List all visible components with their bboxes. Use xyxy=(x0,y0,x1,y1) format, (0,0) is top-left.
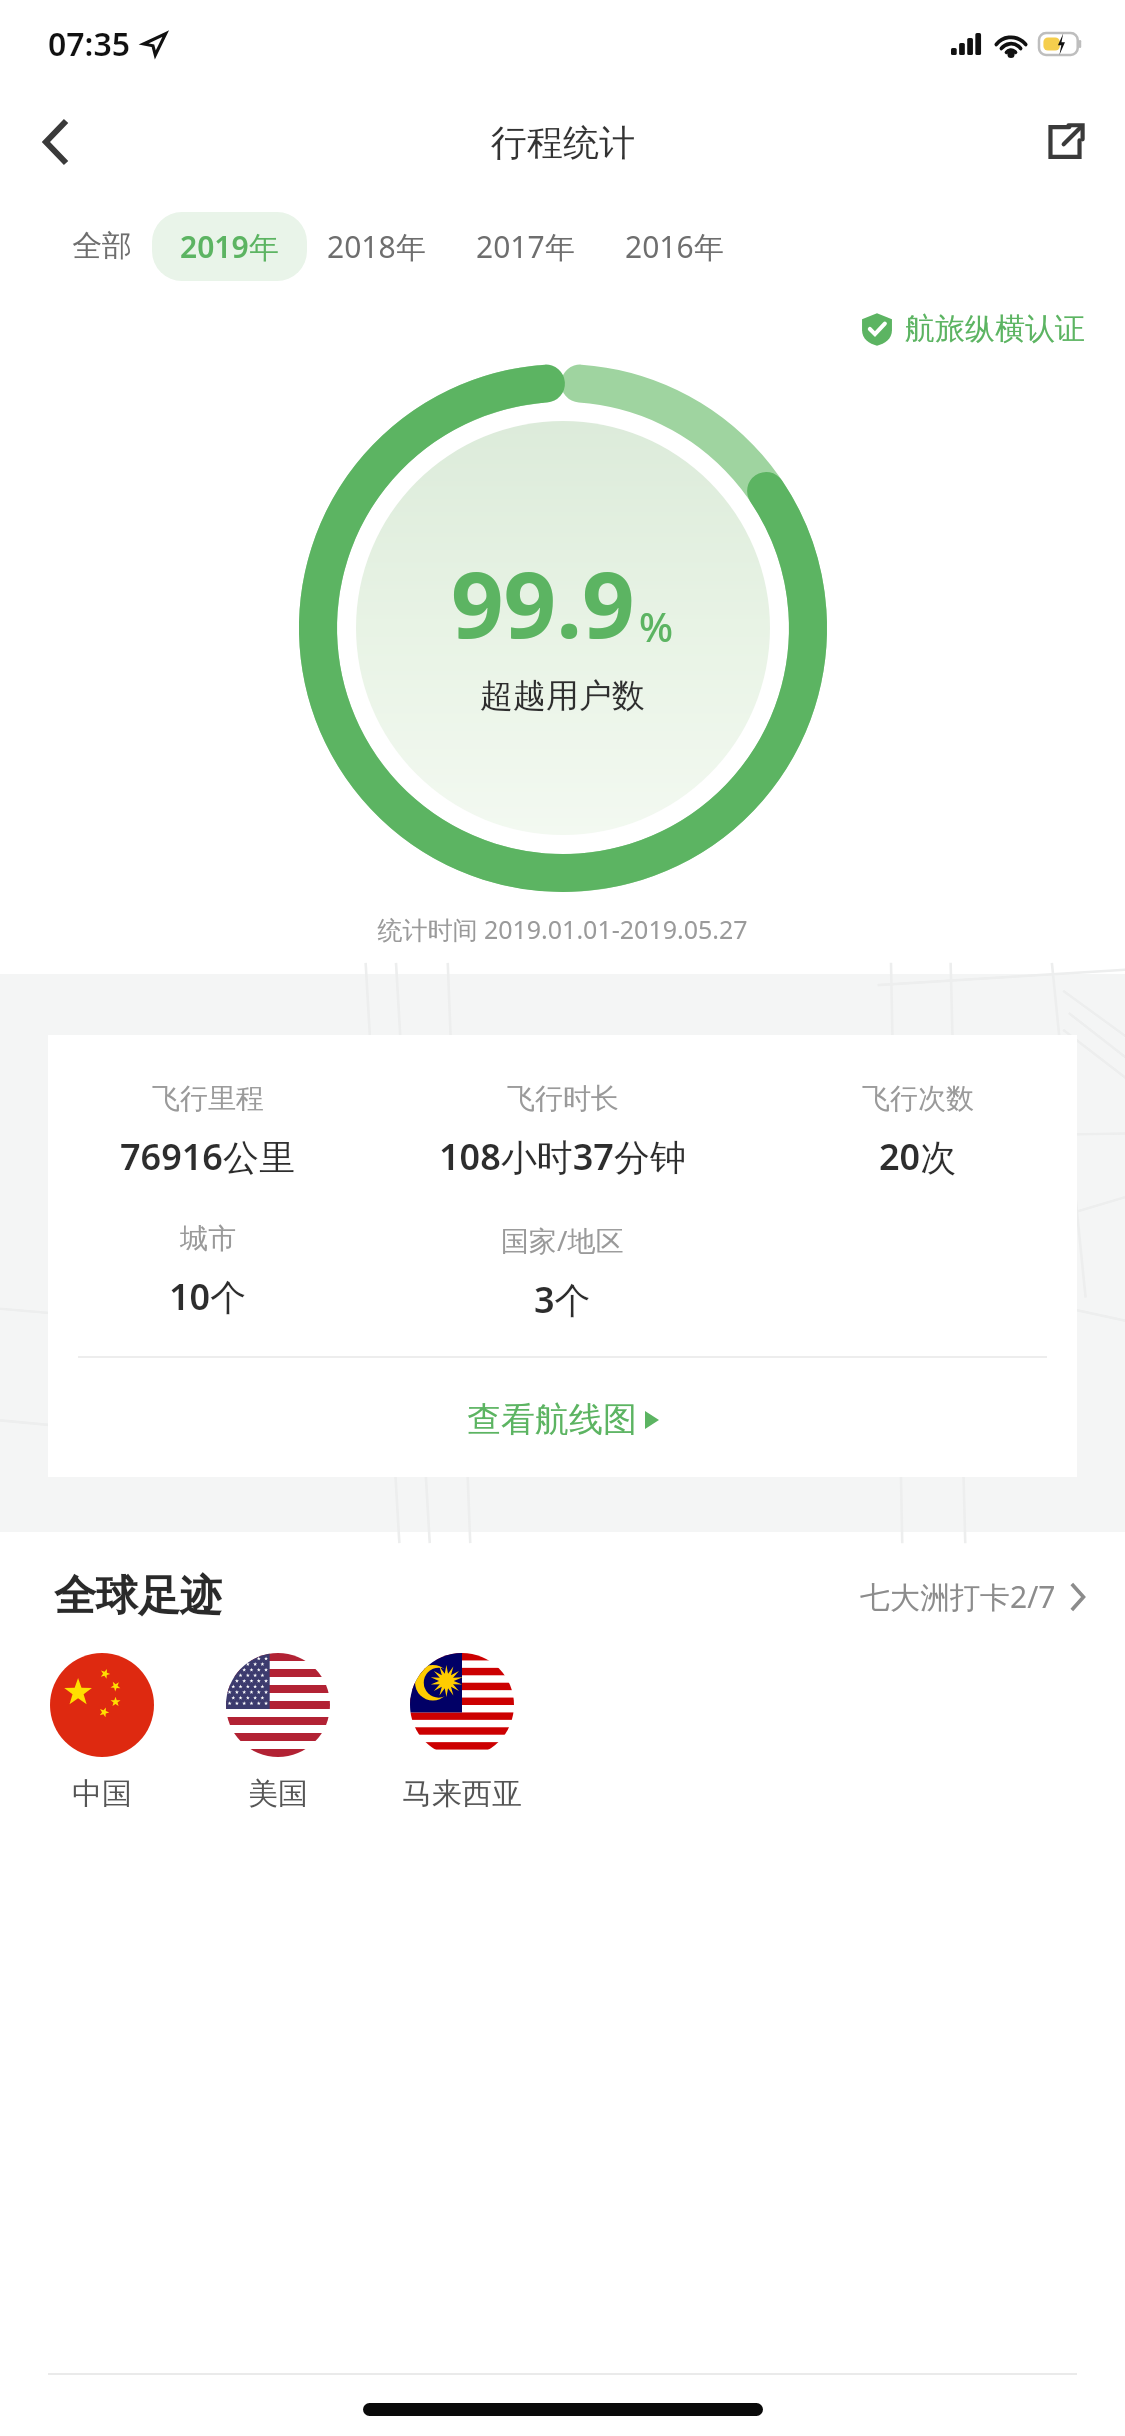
button[interactable]: 航旅纵横认证 xyxy=(860,310,1085,348)
staticText: % xyxy=(639,599,674,653)
button[interactable]: 中国 xyxy=(50,1653,154,1813)
button[interactable]: 2017年 xyxy=(460,212,591,281)
staticText: 飞行时长 xyxy=(507,1081,619,1116)
staticText: 七大洲打卡2/7 xyxy=(860,1576,1056,1617)
button[interactable]: Back xyxy=(16,102,96,182)
staticText: 全球足迹 xyxy=(54,1570,222,1623)
button[interactable]: 2019年 xyxy=(152,212,307,281)
staticText: 108小时37分钟 xyxy=(439,1132,686,1181)
button[interactable]: 马来西亚 xyxy=(402,1653,522,1813)
staticText: 飞行次数 xyxy=(862,1081,974,1116)
button[interactable]: 美国 xyxy=(226,1653,330,1813)
staticText: 99.9 xyxy=(451,540,635,665)
staticText: 07:35 xyxy=(48,22,131,66)
button[interactable]: 全部 xyxy=(56,213,148,279)
staticText: 国家/地区 xyxy=(501,1221,624,1259)
staticText: 10个 xyxy=(169,1272,247,1321)
staticText: 行程统计 xyxy=(491,120,635,165)
staticText: 查看航线图 xyxy=(467,1398,637,1441)
staticText: 飞行里程 xyxy=(152,1081,264,1116)
staticText: 20次 xyxy=(879,1132,957,1181)
staticText: 全部 xyxy=(72,227,132,265)
button[interactable]: 2018年 xyxy=(311,212,442,281)
staticText: 超越用户数 xyxy=(480,675,645,717)
staticText: 2019年 xyxy=(180,226,279,267)
button[interactable]: 2016年 xyxy=(609,212,740,281)
staticText: 航旅纵横认证 xyxy=(905,310,1085,348)
button[interactable]: 七大洲打卡2/7 xyxy=(860,1576,1085,1617)
staticText: 马来西亚 xyxy=(402,1775,522,1813)
staticText: 3个 xyxy=(534,1275,591,1324)
staticText: 2018年 xyxy=(327,226,426,267)
staticText: 美国 xyxy=(248,1775,308,1813)
staticText: 76916公里 xyxy=(120,1132,295,1181)
button[interactable]: 查看航线图 xyxy=(48,1390,1077,1449)
staticText: 中国 xyxy=(72,1775,132,1813)
staticText: 2016年 xyxy=(625,226,724,267)
staticText: 城市 xyxy=(180,1221,236,1256)
staticText: 统计时间 2019.01.01-2019.05.27 xyxy=(0,912,1125,946)
button[interactable]: Share xyxy=(1025,102,1105,182)
staticText: 2017年 xyxy=(476,226,575,267)
